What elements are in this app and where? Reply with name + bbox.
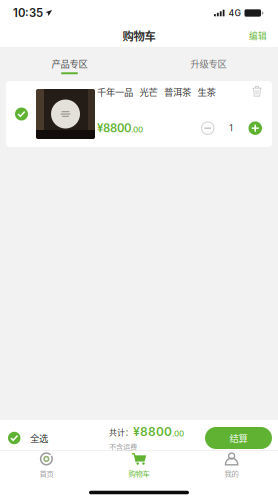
staticText: 结算 <box>229 431 247 445</box>
button[interactable]: 产品专区 <box>0 47 139 80</box>
staticText: .00 <box>131 125 143 134</box>
button[interactable]: 首页 <box>0 451 93 483</box>
button[interactable]: 减少数量 <box>201 122 214 134</box>
button[interactable]: 购物车 <box>93 451 185 483</box>
staticText: 不含运费 <box>109 441 137 452</box>
staticText: 10:35 <box>13 6 43 20</box>
staticText: 升级专区 <box>190 57 226 70</box>
staticText: 产品专区 <box>51 57 87 70</box>
staticText: 4G <box>228 8 240 18</box>
staticText: 1 <box>229 123 233 133</box>
staticText: 光芒 <box>139 85 157 98</box>
button[interactable]: 增加数量 <box>248 121 262 135</box>
staticText: ¥8800 <box>97 121 131 135</box>
staticText: 共计： <box>109 426 133 438</box>
staticText: 全选 <box>30 431 48 445</box>
staticText: 编辑 <box>249 29 267 42</box>
staticText: 普洱茶 <box>164 85 191 98</box>
button[interactable]: 全选 <box>0 422 56 454</box>
staticText: 首页 <box>39 468 53 478</box>
staticText: 千年一品 <box>97 85 133 98</box>
button[interactable]: 升级专区 <box>139 47 278 80</box>
button[interactable]: 我的 <box>185 451 278 483</box>
staticText: 购物车 <box>122 27 155 44</box>
button[interactable]: 编辑 <box>239 22 278 47</box>
button[interactable]: 选择商品 <box>6 81 36 147</box>
button[interactable]: 删除 <box>247 85 262 96</box>
staticText: 购物车 <box>128 468 149 478</box>
staticText: 生茶 <box>197 85 215 98</box>
staticText: 我的 <box>225 468 239 478</box>
staticText: .00 <box>172 429 184 438</box>
button[interactable]: 结算 <box>199 427 278 449</box>
staticText: ¥8800 <box>133 424 172 439</box>
